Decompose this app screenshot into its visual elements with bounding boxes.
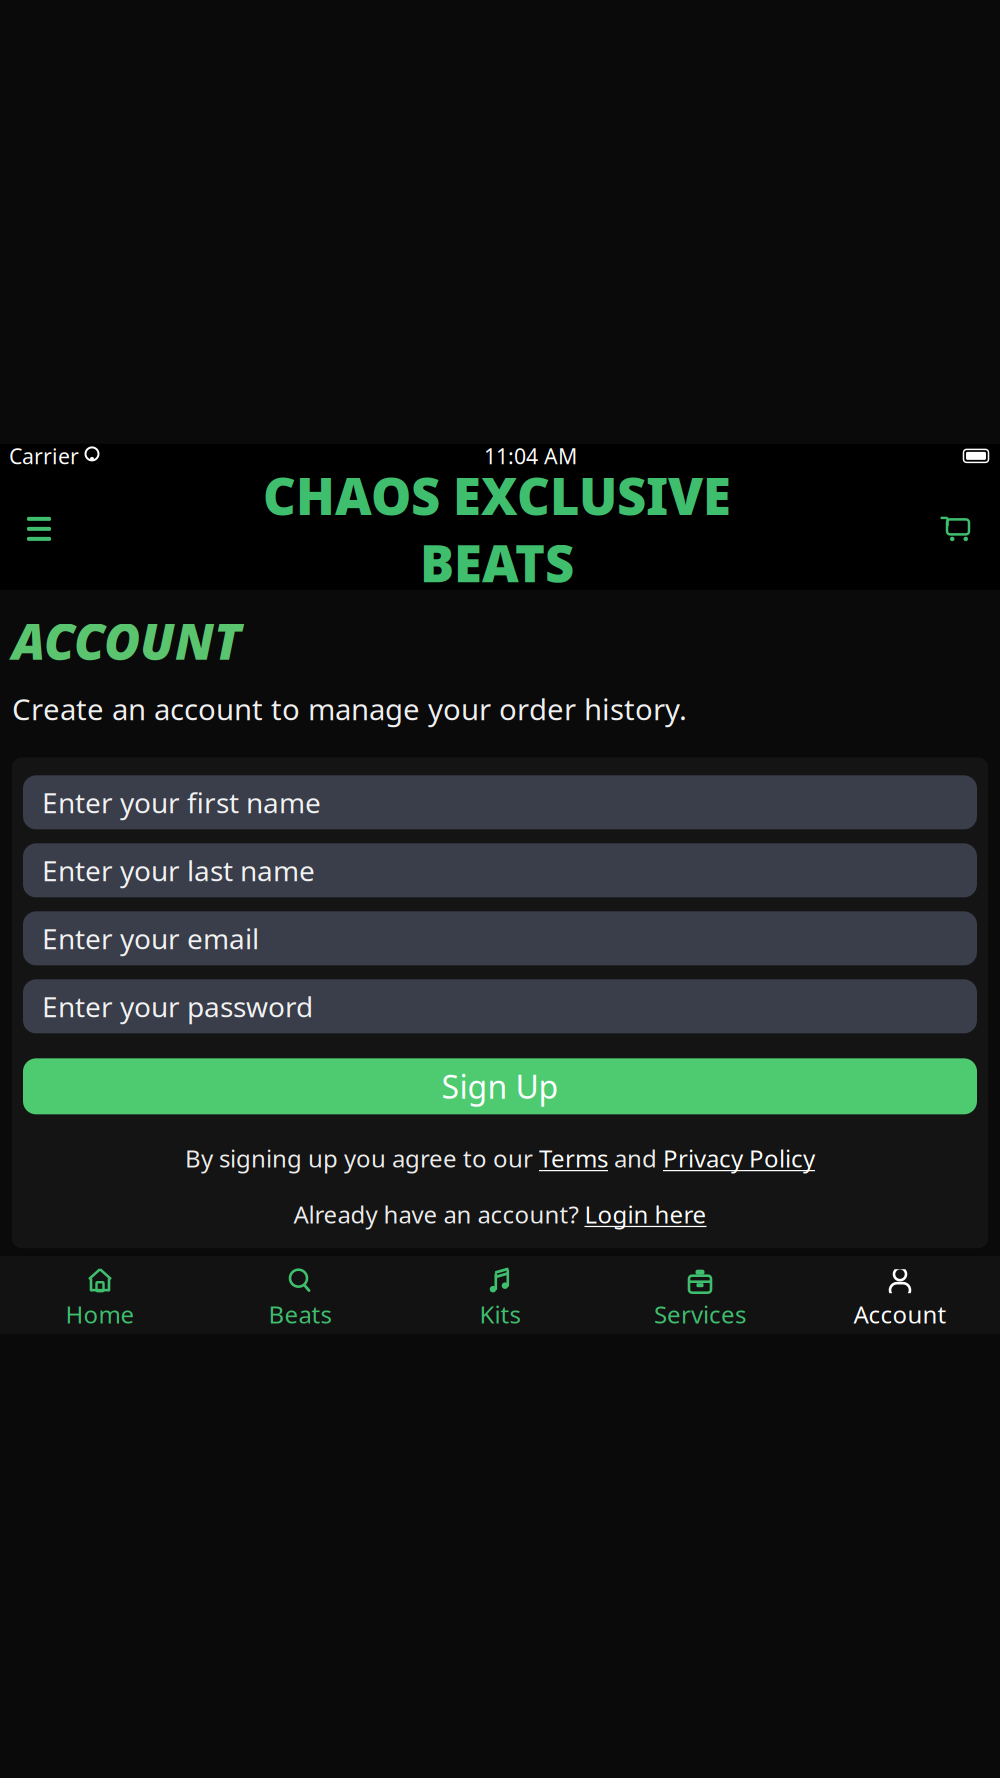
staticText: BEATS [420, 529, 574, 596]
staticText: Already have an account? [293, 1198, 584, 1230]
button[interactable]: Home [0, 1260, 200, 1330]
staticText: and [608, 1142, 663, 1174]
button[interactable]: Account [800, 1260, 1000, 1330]
button[interactable]: Services [600, 1260, 800, 1330]
staticText: Privacy Policy [663, 1142, 815, 1174]
staticText: Kits [479, 1298, 520, 1330]
button[interactable]: Terms [539, 1142, 608, 1174]
button[interactable]: Sign Up [23, 1058, 977, 1114]
button[interactable]: Login here [584, 1198, 706, 1230]
staticText: Account [853, 1298, 946, 1330]
staticText: Enter your password [42, 988, 313, 1025]
staticText: Beats [268, 1298, 331, 1330]
button[interactable]: Kits [400, 1260, 600, 1330]
staticText: Terms [539, 1142, 608, 1174]
staticText: Home [65, 1298, 134, 1330]
staticText: 11:04 AM [484, 442, 577, 470]
button[interactable]: Enter your email [23, 911, 977, 965]
button[interactable]: Menu [17, 508, 61, 550]
button[interactable]: Privacy Policy [663, 1142, 815, 1174]
staticText: Services [654, 1298, 746, 1330]
button[interactable]: Beats [200, 1260, 400, 1330]
button[interactable]: Cart [933, 506, 983, 552]
staticText: ACCOUNT [12, 608, 241, 673]
staticText: Enter your last name [42, 852, 315, 889]
staticText: Carrier [9, 442, 79, 470]
button[interactable]: Enter your last name [23, 843, 977, 897]
staticText: Sign Up [441, 1065, 558, 1108]
staticText: Login here [584, 1198, 706, 1230]
staticText: By signing up you agree to our [185, 1142, 539, 1174]
staticText: Enter your first name [42, 784, 321, 821]
staticText: Enter your email [42, 920, 259, 957]
button[interactable]: Enter your first name [23, 775, 977, 829]
staticText: Create an account to manage your order h… [12, 689, 687, 728]
button[interactable]: Enter your password [23, 979, 977, 1033]
staticText: CHAOS EXCLUSIVE [263, 462, 731, 529]
